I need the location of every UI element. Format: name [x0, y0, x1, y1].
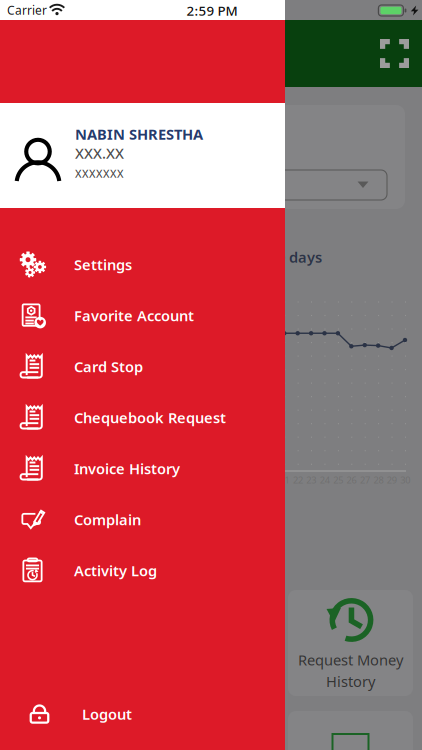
staticText: 2: [27, 474, 32, 486]
staticText: Chequebook Request: [74, 408, 226, 427]
button[interactable]: Activity Log: [0, 545, 285, 596]
staticText: History: [326, 671, 375, 691]
staticText: Invoice History: [74, 459, 180, 478]
button[interactable]: Chequebook Request: [0, 392, 285, 443]
button[interactable]: Card Stop: [0, 341, 285, 392]
staticText: XXX.XX: [75, 143, 124, 163]
staticText: 3: [41, 474, 46, 486]
staticText: Activity Log: [74, 561, 157, 580]
staticText: Carrier: [7, 2, 47, 18]
staticText: 2:59 PM: [186, 2, 237, 19]
staticText: 8: [108, 474, 113, 486]
button[interactable]: Invoice History: [0, 443, 285, 494]
staticText: Request Money: [298, 650, 403, 669]
staticText: XXXXXXX: [75, 166, 124, 181]
staticText: 29: [387, 474, 397, 486]
staticText: 30: [400, 474, 410, 486]
button[interactable]: Complain: [0, 494, 285, 545]
staticText: 25: [333, 474, 343, 486]
staticText: Complain: [74, 510, 141, 529]
button[interactable]: Request Money History: [326, 595, 374, 643]
staticText: 6: [81, 474, 86, 486]
button[interactable]: Favorite Account: [0, 290, 285, 341]
staticText: 27: [360, 474, 370, 486]
staticText: Favorite Account: [74, 306, 194, 325]
staticText: 22: [293, 474, 303, 486]
staticText: 23: [306, 474, 316, 486]
staticText: 9: [121, 474, 126, 486]
staticText: 28: [373, 474, 383, 486]
staticText: 12: [159, 474, 169, 486]
button[interactable]: Settings: [0, 239, 285, 290]
staticText: 10: [132, 474, 142, 486]
staticText: Last 30 days: [235, 247, 322, 267]
button[interactable]: Scan QR code: [372, 31, 416, 75]
staticText: Card Stop: [74, 357, 143, 376]
staticText: 24: [320, 474, 330, 486]
button[interactable]: Logout: [0, 690, 285, 738]
staticText: Settings: [74, 255, 132, 274]
staticText: 11: [145, 474, 155, 486]
staticText: Logout: [82, 704, 132, 724]
staticText: 21: [280, 474, 290, 486]
staticText: NABIN SHRESTHA: [75, 124, 203, 144]
staticText: 26: [347, 474, 357, 486]
staticText: 13: [172, 474, 182, 486]
